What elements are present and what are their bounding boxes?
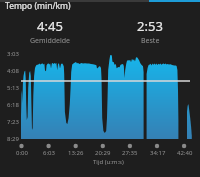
staticText: 3:03: [7, 50, 19, 58]
staticText: 4:45: [37, 17, 63, 35]
staticText: 6:03: [43, 149, 55, 157]
staticText: 4:08: [7, 67, 19, 75]
button[interactable]: Tempo (min/km): [0, 0, 200, 14]
staticText: Beste: [141, 36, 160, 46]
staticText: 6:18: [7, 101, 19, 109]
staticText: 7:23: [7, 118, 19, 126]
staticText: Tempo (min/km): [5, 0, 71, 12]
staticText: 20:29: [95, 149, 111, 157]
staticText: 8:29: [7, 135, 19, 143]
staticText: 13:26: [68, 149, 84, 157]
staticText: Tijd (u:m:s): [93, 158, 124, 166]
button[interactable]: 4:45: [0, 17, 100, 45]
staticText: 0:00: [16, 149, 28, 157]
staticText: Gemiddelde: [30, 36, 71, 46]
button[interactable]: 2:53: [100, 17, 200, 45]
staticText: 5:13: [7, 84, 19, 92]
other: Pace chart: [0, 0, 200, 177]
staticText: 42:40: [177, 149, 193, 157]
staticText: 2:53: [137, 17, 163, 35]
staticText: 34:17: [150, 149, 166, 157]
staticText: 27:35: [122, 149, 138, 157]
